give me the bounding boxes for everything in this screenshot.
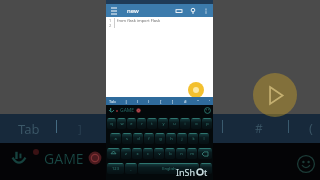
staticText: ) <box>148 99 150 104</box>
button[interactable]: v <box>154 148 164 159</box>
staticText: p <box>206 121 209 126</box>
staticText: ( <box>137 99 139 104</box>
button[interactable]: Location <box>188 6 198 16</box>
staticText: u <box>173 121 176 126</box>
button[interactable]: Tab <box>18 120 40 138</box>
staticText: English <box>162 166 176 171</box>
button[interactable]: y <box>158 118 168 129</box>
staticText: o <box>195 121 198 126</box>
button[interactable]: q <box>107 118 116 129</box>
button[interactable]: j <box>177 133 187 144</box>
staticText: Tab <box>109 99 116 104</box>
button[interactable]: z <box>121 148 131 159</box>
staticText: " <box>197 99 199 104</box>
staticText: ] <box>78 121 82 136</box>
button[interactable]: a <box>110 133 121 144</box>
staticText: ' <box>209 99 210 104</box>
staticText: j <box>181 136 183 141</box>
staticText: InSh <box>176 166 196 178</box>
staticText: ( <box>309 119 313 137</box>
staticText: m <box>190 151 194 156</box>
staticText: i <box>184 121 186 126</box>
staticText: GAME <box>44 149 84 168</box>
button[interactable]: i <box>180 118 190 129</box>
staticText: GAME <box>120 107 135 114</box>
button[interactable]: Voice input <box>108 107 115 114</box>
staticText: c <box>147 151 149 156</box>
button[interactable]: n <box>176 148 186 159</box>
button[interactable]: Search emoji <box>136 108 141 113</box>
button[interactable]: g <box>155 133 165 144</box>
staticText: k <box>192 136 195 141</box>
staticText: 123 <box>112 166 119 171</box>
button[interactable]: English <box>138 163 199 174</box>
button[interactable] <box>198 148 212 159</box>
staticText: Tab <box>18 120 40 138</box>
button[interactable]: Open navigation menu <box>109 6 119 16</box>
button[interactable]: Open file <box>174 6 184 16</box>
button[interactable]: f <box>144 133 154 144</box>
staticText: y <box>162 121 165 126</box>
staticText: s <box>126 136 128 141</box>
staticText: # <box>255 120 263 136</box>
button[interactable]: h <box>166 133 176 144</box>
staticText: t <box>151 121 153 126</box>
button[interactable]: r <box>137 118 146 129</box>
staticText: z <box>125 151 127 156</box>
staticText: # <box>184 99 187 104</box>
staticText: v <box>158 151 161 156</box>
button[interactable]: , <box>125 163 137 174</box>
staticText: b <box>169 151 172 156</box>
staticText: r <box>141 121 143 126</box>
button[interactable]: Play <box>253 73 297 117</box>
button[interactable]: e <box>127 118 136 129</box>
staticText: , <box>130 166 132 171</box>
button[interactable]: Voice input <box>10 150 28 168</box>
staticText: e <box>130 121 133 126</box>
staticText: [ <box>160 99 162 104</box>
button[interactable]: More options <box>201 6 211 16</box>
button[interactable]: Emoji <box>204 107 211 114</box>
staticText: f <box>148 136 150 141</box>
staticText: l <box>203 136 205 141</box>
button[interactable]: w <box>117 118 126 129</box>
button[interactable]: s <box>122 133 132 144</box>
button[interactable]: d <box>133 133 143 144</box>
button[interactable]: l <box>199 133 209 144</box>
button[interactable]: . <box>200 163 212 174</box>
button[interactable]: 123 <box>107 163 124 174</box>
button[interactable]: m <box>187 148 197 159</box>
staticText: q <box>110 121 113 126</box>
button[interactable]: o <box>191 118 201 129</box>
staticText: h <box>170 136 173 141</box>
button[interactable] <box>107 148 120 159</box>
staticText: 1 <box>109 18 112 23</box>
button[interactable]: Search emoji <box>88 151 102 165</box>
button[interactable]: k <box>188 133 198 144</box>
staticText: t <box>204 166 208 178</box>
staticText: ] <box>172 99 174 104</box>
button[interactable]: c <box>143 148 153 159</box>
staticText: from flask import Flask <box>117 18 161 23</box>
button[interactable]: t <box>147 118 157 129</box>
button[interactable]: u <box>169 118 179 129</box>
staticText: 2 <box>109 23 112 28</box>
staticText: . <box>205 166 207 171</box>
staticText: x <box>136 151 139 156</box>
staticText: | <box>125 99 128 104</box>
staticText: g <box>159 136 162 141</box>
staticText: d <box>137 136 140 141</box>
staticText: a <box>114 136 117 141</box>
staticText: n <box>180 151 183 156</box>
button[interactable]: x <box>132 148 142 159</box>
button[interactable]: Run code <box>188 82 204 98</box>
staticText: new <box>127 7 139 15</box>
button[interactable]: b <box>165 148 175 159</box>
button[interactable]: p <box>202 118 212 129</box>
button[interactable]: Emoji <box>296 154 316 174</box>
staticText: w <box>120 121 124 126</box>
